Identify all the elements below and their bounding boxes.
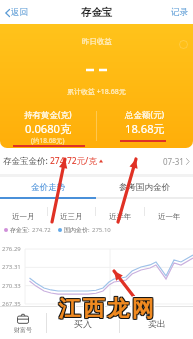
- staticText: 金价走势: [31, 182, 65, 193]
- button[interactable]: 存金宝金价:: [0, 148, 193, 174]
- button[interactable]: 财富号: [0, 307, 46, 339]
- staticText: 买入: [74, 318, 92, 329]
- button[interactable]: 金价走势: [0, 177, 96, 197]
- staticText: 财富号: [14, 326, 32, 334]
- staticText: 持有黄金(克): [24, 109, 72, 121]
- staticText: 卖出: [148, 318, 166, 329]
- staticText: 274.72: [32, 226, 51, 234]
- staticText: 275.10: [92, 226, 111, 234]
- staticText: 江西龙网: [58, 294, 156, 322]
- staticText: 江西龙网: [57, 297, 155, 325]
- staticText: 江西龙网: [57, 295, 155, 323]
- staticText: 江西龙网: [56, 294, 154, 322]
- button[interactable]: 卖出: [120, 307, 193, 339]
- staticText: 江西龙网: [57, 293, 155, 321]
- staticText: 江西龙网: [56, 297, 154, 325]
- staticText: 江西龙网: [58, 296, 156, 324]
- staticText: (约18.68元): [31, 136, 65, 145]
- staticText: 存金宝: [81, 6, 113, 19]
- staticText: 276.29: [2, 245, 21, 253]
- staticText: 江西龙网: [55, 294, 153, 322]
- staticText: 近一年: [158, 212, 181, 221]
- button[interactable]: 近一年: [145, 199, 193, 223]
- staticText: 江西龙网: [59, 295, 157, 323]
- staticText: 江西龙网: [56, 296, 154, 324]
- staticText: 昨日收益: [82, 37, 112, 46]
- staticText: 江西龙网: [59, 294, 157, 322]
- staticText: 江西龙网: [58, 295, 156, 323]
- staticText: 江西龙网: [56, 294, 154, 322]
- button[interactable]: 帮助: [179, 40, 188, 49]
- staticText: 江西龙网: [59, 296, 157, 324]
- staticText: 江西龙网: [57, 296, 155, 324]
- staticText: 18.68元: [125, 121, 165, 136]
- staticText: 274.72元/克: [50, 155, 97, 167]
- staticText: 江西龙网: [58, 297, 156, 325]
- staticText: 江西龙网: [56, 295, 154, 323]
- staticText: 273.31: [2, 263, 21, 271]
- button[interactable]: 记录: [169, 4, 190, 21]
- staticText: 江西龙网: [57, 294, 155, 322]
- button[interactable]: 买入: [47, 307, 119, 339]
- staticText: 07-31: [163, 156, 184, 167]
- staticText: 江西龙网: [58, 293, 156, 321]
- staticText: 总金额(元): [125, 109, 165, 121]
- staticText: 存金宝:: [10, 226, 32, 234]
- staticText: 江西龙网: [57, 296, 155, 324]
- staticText: 国内金价:: [64, 226, 92, 234]
- staticText: 江西龙网: [58, 294, 156, 322]
- staticText: 江西龙网: [55, 295, 153, 323]
- staticText: 江西龙网: [58, 296, 156, 324]
- staticText: 近一月: [12, 212, 35, 221]
- staticText: 参考国内金价: [119, 182, 170, 193]
- staticText: 累计收益 +18.68元: [67, 87, 126, 97]
- button[interactable]: 近三月: [48, 199, 95, 223]
- button[interactable]: 参考国内金价: [96, 177, 193, 197]
- staticText: 江西龙网: [55, 296, 153, 324]
- staticText: 江西龙网: [57, 295, 155, 323]
- button[interactable]: 返回: [3, 4, 30, 21]
- staticText: 江西龙网: [56, 296, 154, 324]
- staticText: 存金宝金价:: [3, 155, 48, 167]
- staticText: 0.0680克: [25, 121, 72, 136]
- staticText: 267.35: [2, 300, 21, 306]
- staticText: 近三月: [60, 212, 83, 221]
- button[interactable]: 近一月: [0, 199, 47, 223]
- staticText: 江西龙网: [58, 295, 156, 323]
- staticText: 江西龙网: [57, 294, 155, 322]
- staticText: 近半年: [109, 212, 132, 221]
- staticText: 返回: [11, 7, 28, 18]
- staticText: 江西龙网: [56, 295, 154, 323]
- staticText: 江西龙网: [56, 293, 154, 321]
- button[interactable]: 近半年: [96, 199, 144, 223]
- staticText: 270.33: [2, 282, 21, 290]
